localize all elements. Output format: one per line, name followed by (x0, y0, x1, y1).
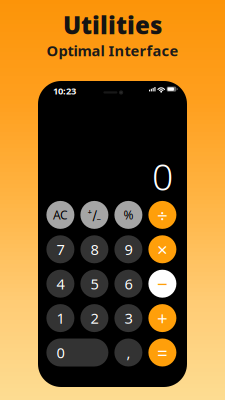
button[interactable]: + (148, 304, 176, 332)
staticText: ÷ (157, 202, 168, 227)
staticText: 5 (90, 274, 98, 293)
button[interactable]: % (114, 201, 142, 229)
button[interactable]: 1 (46, 304, 74, 332)
staticText: 1 (56, 308, 64, 328)
staticText: 9 (124, 240, 132, 259)
staticText: 2 (90, 308, 98, 328)
staticText: % (123, 207, 133, 223)
button[interactable]: 0 (46, 338, 108, 366)
button[interactable]: AC (46, 201, 74, 229)
staticText: 3 (124, 308, 132, 328)
staticText: 0 (56, 343, 64, 362)
staticText: AC (53, 207, 68, 223)
staticText: 0 (152, 151, 173, 201)
staticText: , (126, 343, 130, 362)
button[interactable]: 9 (114, 235, 142, 263)
staticText: × (157, 237, 168, 262)
staticText: = (157, 340, 168, 365)
staticText: Optimal Interface (46, 41, 178, 60)
staticText: 10:23 (53, 85, 76, 97)
button[interactable]: 4 (46, 270, 74, 298)
button[interactable]: ÷ (148, 201, 176, 229)
button[interactable]: , (114, 338, 142, 366)
staticText: 4 (56, 274, 64, 293)
staticText: 8 (90, 240, 98, 259)
button[interactable]: − (148, 270, 176, 298)
staticText: Utilities (63, 9, 162, 41)
staticText: ⁺∕₋ (87, 206, 101, 224)
button[interactable]: 7 (46, 235, 74, 263)
button[interactable]: ⁺∕₋ (80, 201, 108, 229)
staticText: 7 (56, 240, 64, 259)
button[interactable]: 5 (80, 270, 108, 298)
button[interactable]: 6 (114, 270, 142, 298)
button[interactable]: = (148, 338, 176, 366)
button[interactable]: 8 (80, 235, 108, 263)
staticText: 6 (124, 274, 132, 293)
staticText: − (157, 271, 168, 296)
button[interactable]: 2 (80, 304, 108, 332)
button[interactable]: 3 (114, 304, 142, 332)
staticText: + (157, 306, 168, 330)
button[interactable]: × (148, 235, 176, 263)
